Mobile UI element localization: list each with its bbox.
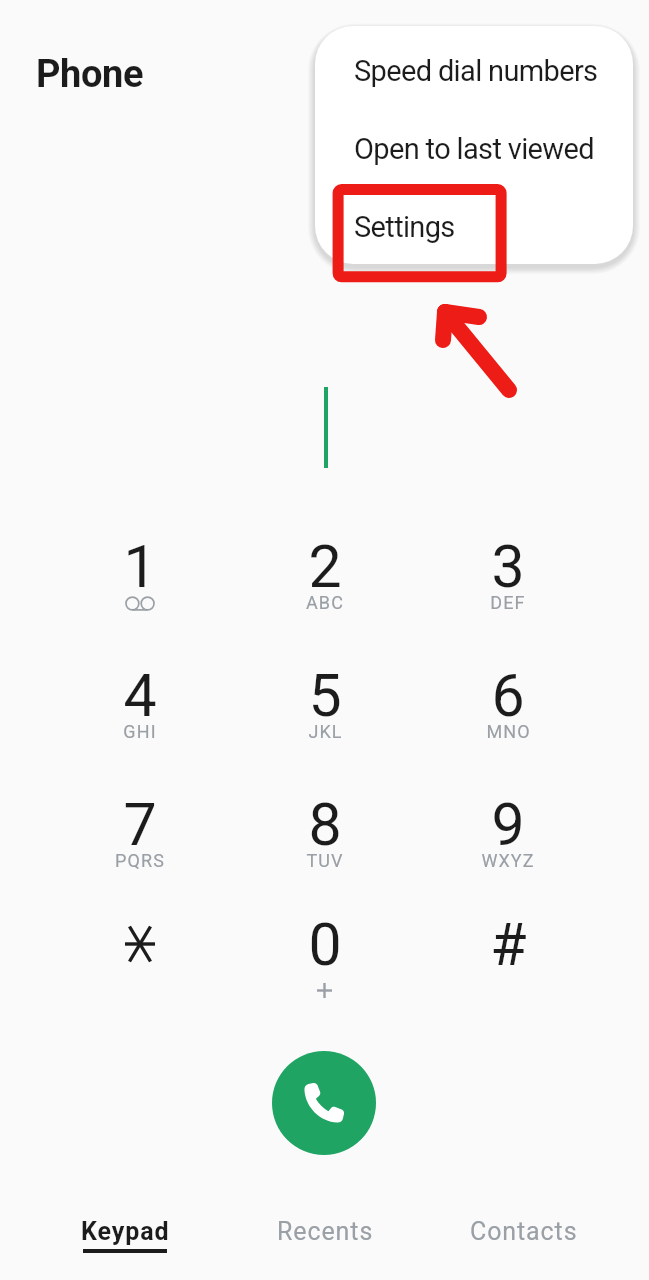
button[interactable]: Open to last viewed xyxy=(315,110,633,188)
staticText: 0 xyxy=(308,910,342,979)
staticText: # xyxy=(490,910,527,979)
staticText: 8 xyxy=(308,790,342,859)
staticText: Phone xyxy=(36,52,144,97)
staticText: GHI xyxy=(123,721,157,742)
staticText: 7 xyxy=(123,790,157,859)
button[interactable]: # xyxy=(448,910,568,1030)
button[interactable] xyxy=(80,864,200,984)
staticText: Keypad xyxy=(81,1217,170,1246)
button[interactable]: Recents xyxy=(235,1196,415,1280)
button[interactable]: 5 xyxy=(265,661,385,781)
staticText: 3 xyxy=(491,532,525,601)
staticText: Contacts xyxy=(470,1217,578,1246)
button[interactable]: Contacts xyxy=(434,1196,614,1280)
staticText: 5 xyxy=(308,661,342,730)
staticText: Speed dial numbers xyxy=(354,54,598,88)
button[interactable]: 1 xyxy=(80,532,200,652)
button[interactable]: Call xyxy=(272,1051,376,1155)
button[interactable]: 3 xyxy=(448,532,568,652)
staticText: 9 xyxy=(491,790,525,859)
staticText: Recents xyxy=(277,1217,374,1246)
staticText: PQRS xyxy=(115,850,165,871)
button[interactable]: 9 xyxy=(448,790,568,910)
button[interactable]: Speed dial numbers xyxy=(315,32,633,110)
staticText: DEF xyxy=(490,592,526,613)
staticText: 2 xyxy=(308,532,342,601)
staticText: Open to last viewed xyxy=(354,132,594,166)
button[interactable]: 4 xyxy=(80,661,200,781)
button[interactable]: 6 xyxy=(448,661,568,781)
staticText: 4 xyxy=(123,661,157,730)
button[interactable]: 8 xyxy=(265,790,385,910)
staticText: 6 xyxy=(491,661,525,730)
staticText: Settings xyxy=(354,210,455,244)
button[interactable]: 0 xyxy=(265,910,385,1030)
button[interactable]: 7 xyxy=(80,790,200,910)
staticText: MNO xyxy=(486,721,531,742)
staticText: TUV xyxy=(306,850,344,871)
staticText: WXYZ xyxy=(481,850,535,871)
button[interactable]: Settings xyxy=(315,188,633,264)
staticText: JKL xyxy=(308,721,343,742)
button[interactable]: Keypad xyxy=(35,1196,215,1280)
button[interactable]: Phone xyxy=(36,52,144,97)
button[interactable]: 2 xyxy=(265,532,385,652)
staticText: 1 xyxy=(123,532,157,601)
staticText: ABC xyxy=(306,592,344,613)
